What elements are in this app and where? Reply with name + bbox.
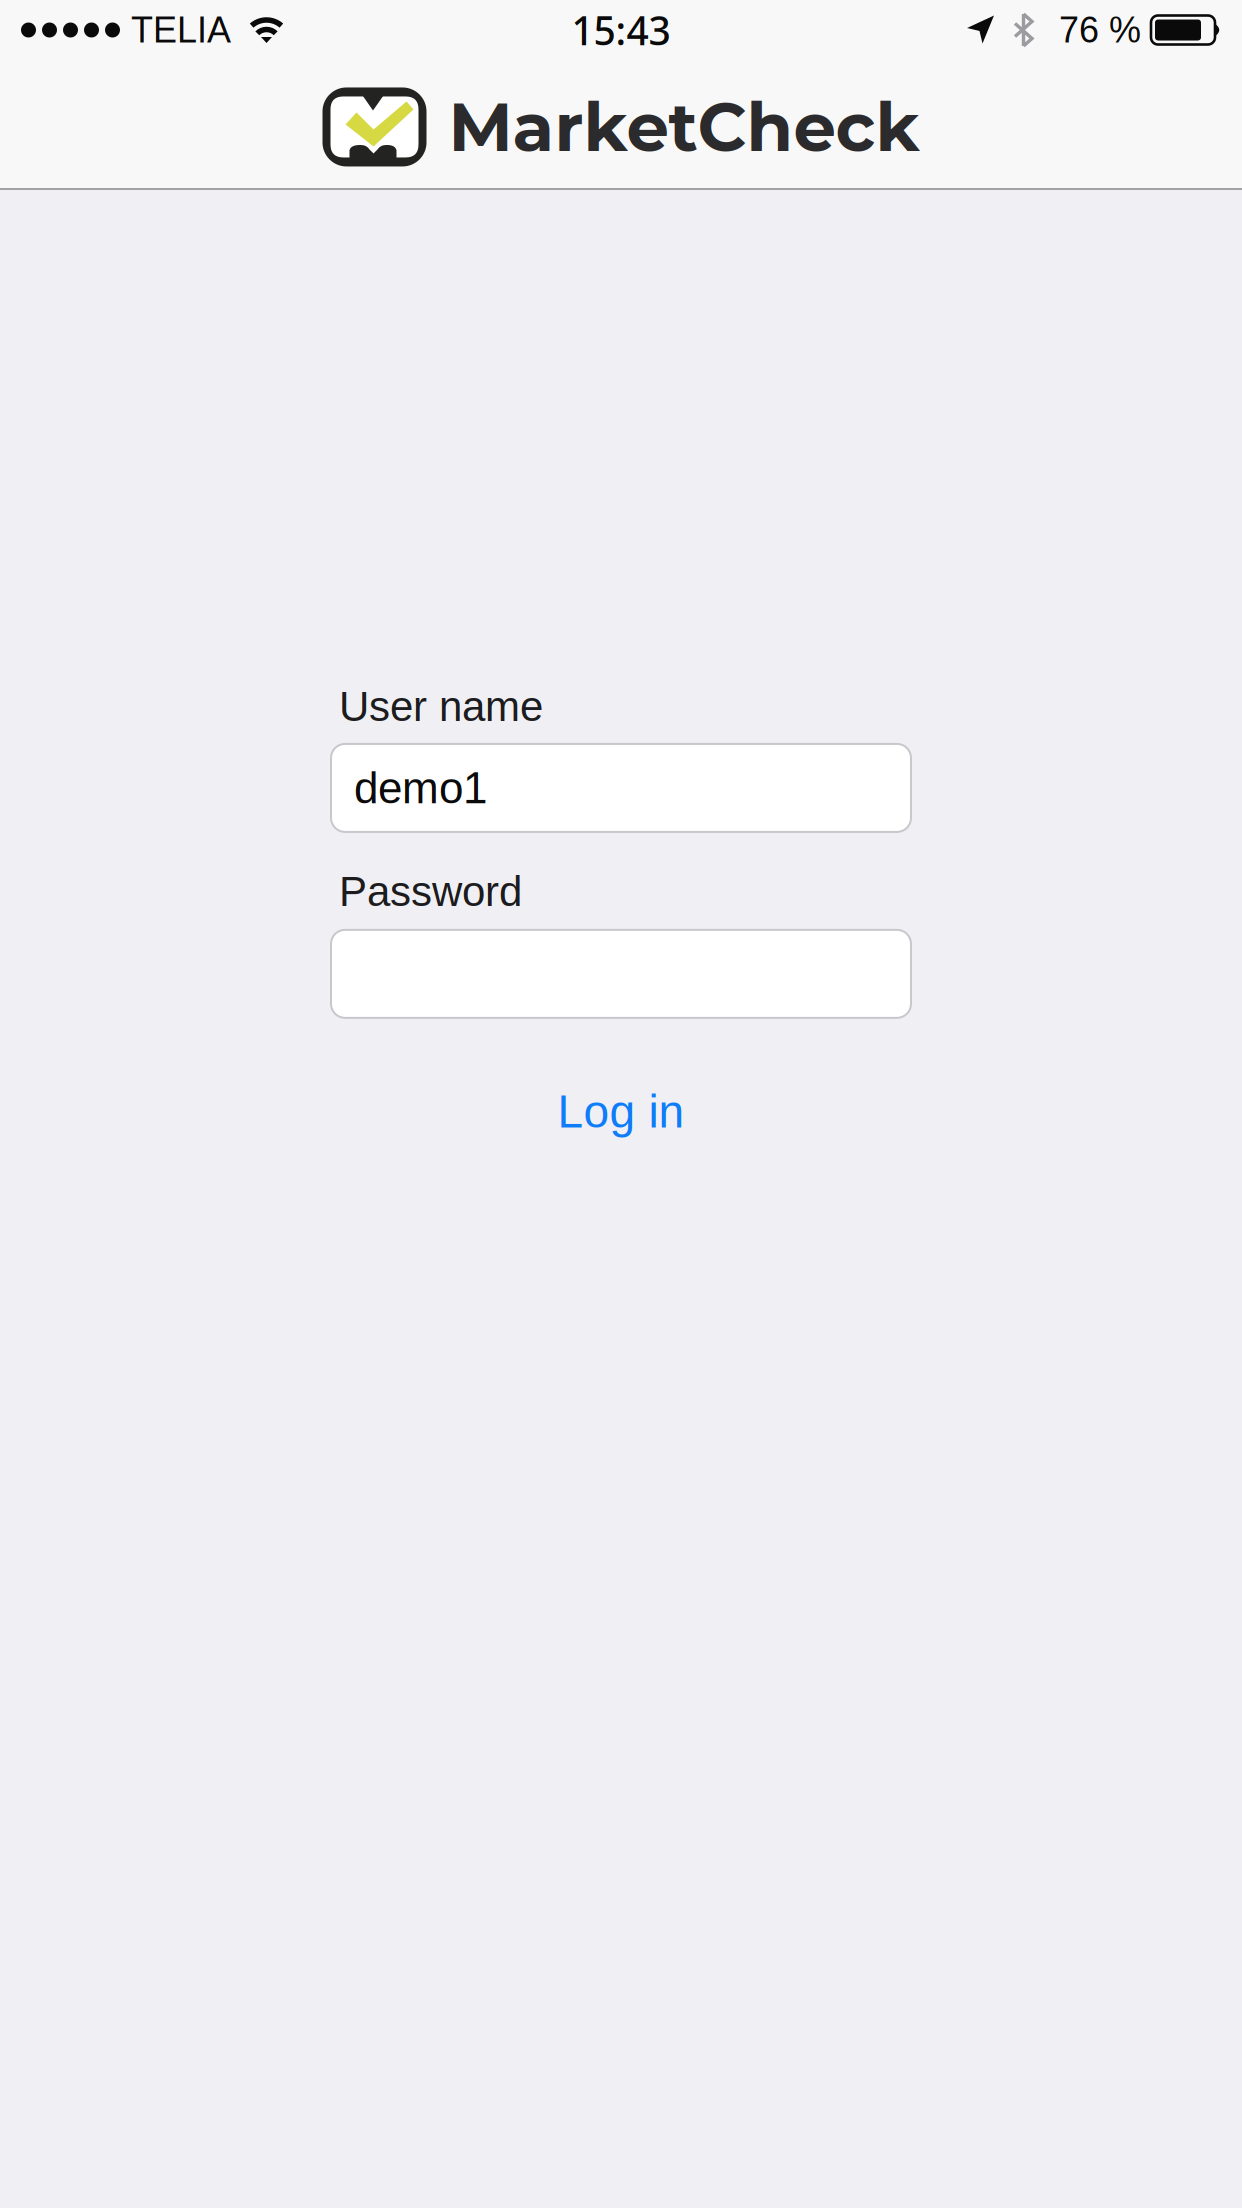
staticText: Password <box>339 868 522 915</box>
staticText: 15:43 <box>571 3 670 56</box>
staticText: TELIA <box>131 10 231 50</box>
staticText: MarketCheck <box>448 86 919 168</box>
staticText: User name <box>339 683 543 730</box>
button[interactable]: Password <box>331 930 911 1018</box>
button[interactable]: User name <box>331 744 911 832</box>
staticText: demo1 <box>354 763 487 812</box>
staticText: 76 % <box>1059 10 1141 50</box>
staticText: Log in <box>557 1086 684 1137</box>
button[interactable]: Log in <box>557 1086 684 1137</box>
